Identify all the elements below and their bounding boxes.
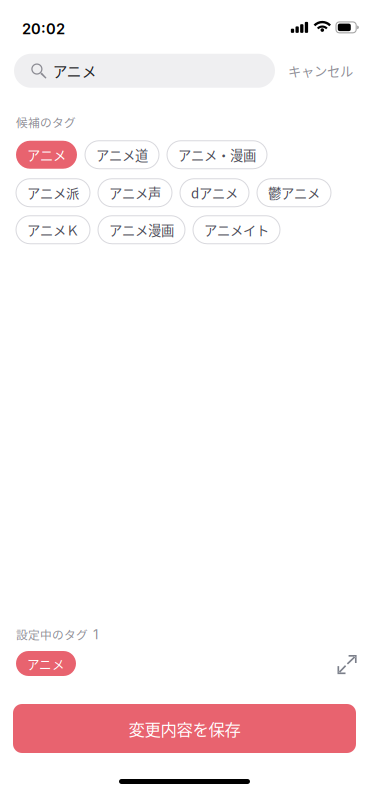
staticText: 鬱アニメ bbox=[268, 183, 320, 202]
staticText: 1 bbox=[93, 626, 98, 642]
staticText: 変更内容を保存 bbox=[128, 717, 240, 740]
button[interactable]: アニメ漫画 bbox=[98, 216, 185, 244]
button[interactable]: アニメ bbox=[16, 651, 76, 676]
button[interactable]: アニメ道 bbox=[85, 141, 159, 169]
button[interactable]: dアニメ bbox=[180, 179, 249, 207]
button[interactable]: アニメ bbox=[16, 141, 77, 169]
staticText: 設定中のタグ bbox=[16, 626, 88, 643]
staticText: 候補のタグ bbox=[16, 114, 76, 131]
button[interactable]: アニメイト bbox=[193, 216, 280, 244]
staticText: アニメ道 bbox=[96, 145, 148, 164]
staticText: アニメ bbox=[27, 145, 66, 164]
staticText: アニメ派 bbox=[27, 183, 79, 202]
button[interactable]: アニメ派 bbox=[16, 179, 90, 207]
button[interactable]: キャンセル bbox=[288, 54, 353, 88]
staticText: キャンセル bbox=[288, 61, 353, 80]
button[interactable]: アニメ声 bbox=[98, 179, 172, 207]
staticText: アニメ・漫画 bbox=[178, 145, 256, 164]
staticText: アニメ bbox=[27, 654, 65, 672]
button[interactable]: アニメ・漫画 bbox=[167, 141, 267, 169]
staticText: アニメイト bbox=[204, 220, 269, 239]
staticText: dアニメ bbox=[191, 183, 238, 202]
staticText: アニメ bbox=[53, 60, 97, 81]
button[interactable]: 鬱アニメ bbox=[257, 179, 331, 207]
staticText: アニメＫ bbox=[27, 220, 79, 239]
button[interactable]: Expand bbox=[336, 653, 358, 675]
staticText: アニメ声 bbox=[109, 183, 161, 202]
staticText: アニメ漫画 bbox=[109, 220, 174, 239]
staticText: 20:02 bbox=[22, 20, 65, 38]
button[interactable]: アニメＫ bbox=[16, 216, 90, 244]
button[interactable]: 変更内容を保存 bbox=[13, 704, 356, 753]
